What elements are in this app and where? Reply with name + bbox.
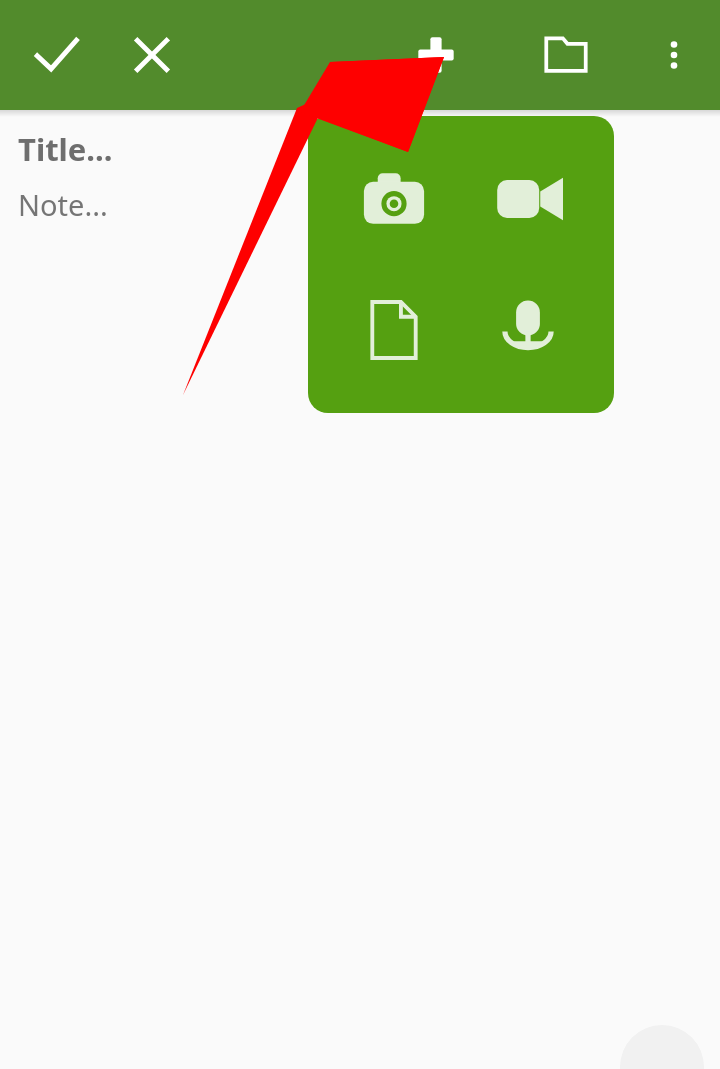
button[interactable]: Record video xyxy=(480,151,576,247)
button[interactable]: Discard xyxy=(118,21,186,89)
button[interactable]: Note... xyxy=(18,185,108,224)
button[interactable]: Attach xyxy=(402,21,470,89)
button[interactable]: More options xyxy=(644,25,704,85)
button[interactable]: Take photo xyxy=(346,151,442,247)
button[interactable]: Add note xyxy=(620,1025,704,1069)
button[interactable]: Folder xyxy=(532,21,600,89)
button[interactable]: Save xyxy=(22,21,90,89)
button[interactable]: Record audio xyxy=(480,282,576,378)
button[interactable]: Title... xyxy=(18,128,113,170)
button[interactable]: Attach file xyxy=(346,282,442,378)
